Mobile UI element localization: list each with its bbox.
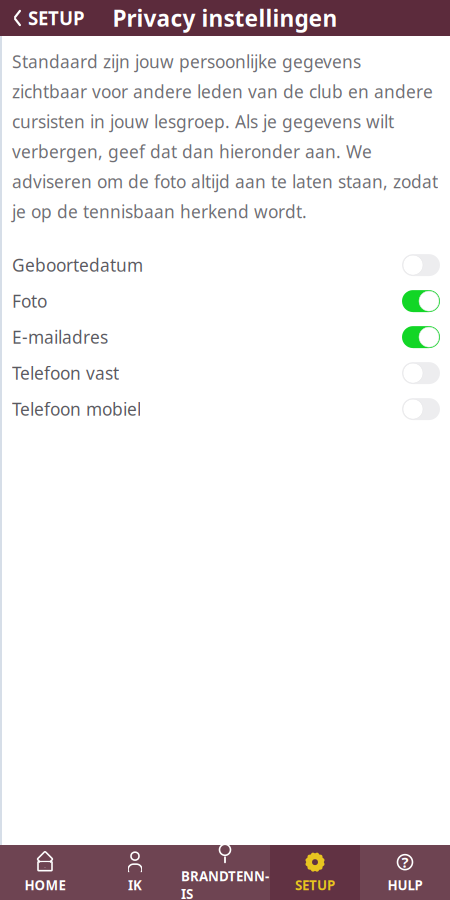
staticText: HOME bbox=[24, 876, 65, 894]
staticText: ? bbox=[401, 852, 408, 872]
button[interactable]: SETUP bbox=[270, 845, 360, 900]
staticText: HULP bbox=[387, 876, 422, 894]
button[interactable]: ? bbox=[360, 845, 450, 900]
staticText: E-mailadres bbox=[12, 326, 108, 349]
button[interactable]: Telefoon vast bbox=[0, 355, 450, 391]
button[interactable]: HOME bbox=[0, 845, 90, 900]
button[interactable]: BRANDTENNIS bbox=[180, 845, 270, 900]
staticText: Standaard zijn jouw persoonlijke gegeven… bbox=[12, 50, 438, 223]
staticText: BRANDTENNIS bbox=[181, 867, 269, 900]
staticText: SETUP bbox=[28, 6, 85, 30]
button[interactable]: SETUP bbox=[0, 0, 95, 36]
button[interactable]: Geboortedatum bbox=[0, 247, 450, 283]
button[interactable]: IK bbox=[90, 845, 180, 900]
staticText: Privacy instellingen bbox=[112, 3, 337, 33]
staticText: Telefoon vast bbox=[12, 362, 119, 385]
button[interactable]: E-mailadres bbox=[0, 319, 450, 355]
staticText: SETUP bbox=[295, 876, 335, 894]
staticText: Foto bbox=[12, 290, 47, 313]
staticText: Geboortedatum bbox=[12, 254, 143, 277]
button[interactable]: Telefoon mobiel bbox=[0, 391, 450, 427]
staticText: IK bbox=[128, 876, 142, 894]
staticText: Telefoon mobiel bbox=[12, 398, 141, 421]
button[interactable]: Foto bbox=[0, 283, 450, 319]
